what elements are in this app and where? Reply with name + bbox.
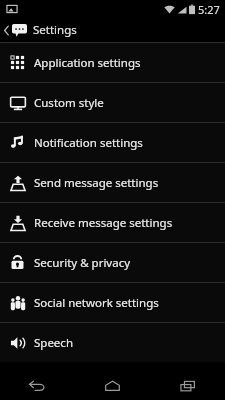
staticText: Speech [34,335,73,351]
button[interactable]: Custom style [0,83,225,122]
staticText: Custom style [34,95,104,111]
button[interactable]: Back to app [0,22,83,38]
button[interactable]: Send message settings [0,163,225,202]
staticText: Notification settings [34,135,143,151]
staticText: Social network settings [34,295,159,311]
button[interactable]: Receive message settings [0,203,225,242]
staticText: 5:27 [198,2,220,17]
button[interactable]: Social network settings [0,283,225,322]
button[interactable]: Speech [0,323,225,362]
button[interactable]: Notification settings [0,123,225,162]
staticText: Receive message settings [34,215,173,231]
button[interactable]: Application settings [0,43,225,82]
button[interactable]: Security & privacy [0,243,225,282]
staticText: Application settings [34,55,141,71]
button[interactable]: Back [0,372,75,400]
staticText: Send message settings [34,175,159,191]
button[interactable]: Recent apps [150,372,225,400]
button[interactable]: Home [75,372,150,400]
staticText: Settings [33,22,77,38]
staticText: Security & privacy [34,255,131,271]
